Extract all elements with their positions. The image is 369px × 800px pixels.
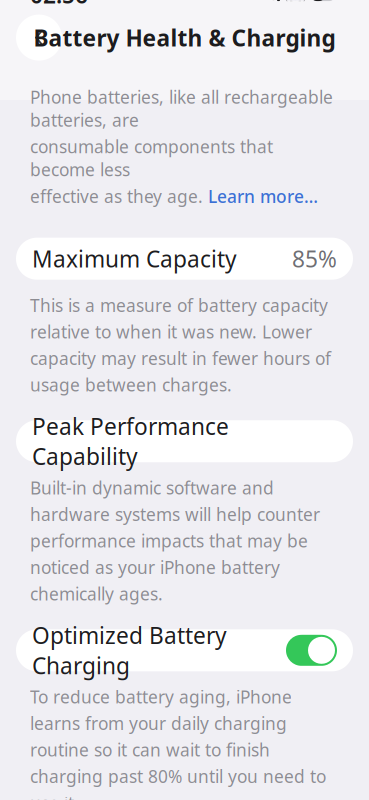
staticText: effective as they age. [30,185,208,208]
button[interactable]: Optimized Battery Charging [0,629,369,671]
staticText: Optimized Battery Charging [32,620,227,680]
staticText: Peak Performance Capability [32,411,229,471]
staticText: This is a measure of battery capacity re… [30,294,331,396]
staticText: Phone batteries, like all rechargeable b… [30,86,333,132]
staticText: consumable components that become less [30,135,273,181]
staticText: 41 [312,0,324,2]
button[interactable]: Back [16,15,62,61]
staticText: Built-in dynamic software and hardware s… [30,476,320,605]
staticText: To reduce battery aging, iPhone learns f… [30,685,326,800]
button[interactable]: Maximum Capacity [0,238,369,280]
staticText: 85% [292,244,337,274]
staticText: 02:56 [30,0,88,10]
button[interactable]: Peak Performance Capability [0,420,369,462]
staticText: Battery Health & Charging [33,22,335,53]
button[interactable]: Learn more… [208,185,318,208]
staticText: Learn more… [208,185,318,208]
staticText: Maximum Capacity [32,244,237,274]
